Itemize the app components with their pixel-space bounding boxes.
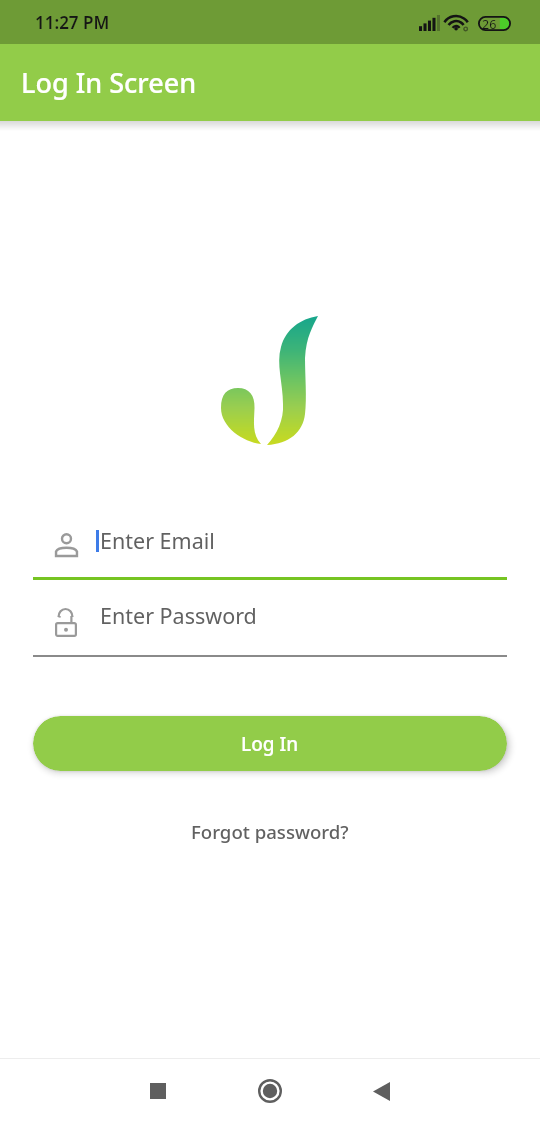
button[interactable]: Forgot password? <box>183 815 357 848</box>
staticText: Log In <box>241 731 299 757</box>
button[interactable]: Home <box>238 1059 302 1123</box>
staticText: Enter Password <box>100 601 257 630</box>
staticText: Log In Screen <box>21 64 197 101</box>
staticText: 26 <box>482 16 497 31</box>
button[interactable]: Enter Email <box>33 513 507 577</box>
button[interactable]: Log In <box>33 716 507 771</box>
staticText: Enter Email <box>100 526 215 555</box>
button[interactable]: Recents <box>126 1059 190 1123</box>
staticText: 11:27 PM <box>35 11 110 34</box>
button[interactable]: Back <box>349 1059 413 1123</box>
button[interactable]: Enter Password <box>33 591 507 655</box>
staticText: Forgot password? <box>191 819 349 844</box>
